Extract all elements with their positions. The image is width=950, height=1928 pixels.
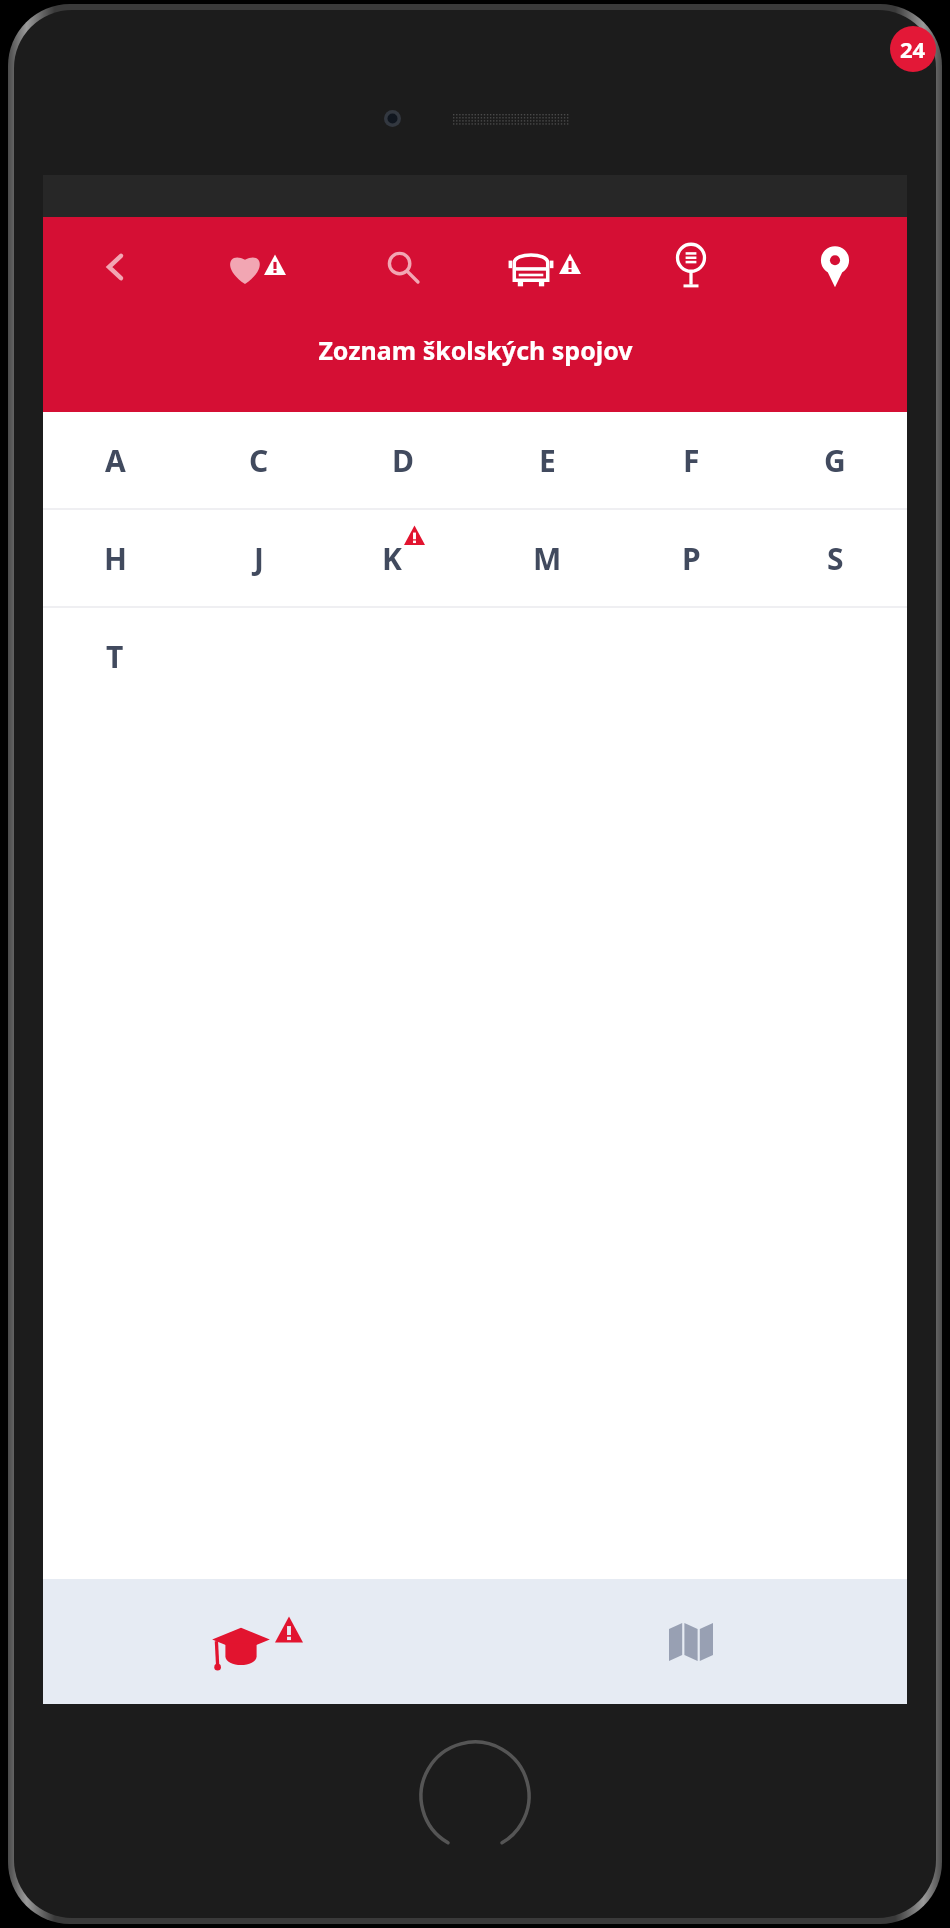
staticText: T xyxy=(106,636,124,677)
staticText: D xyxy=(392,440,414,481)
button[interactable]: Notifications xyxy=(890,26,936,72)
button[interactable]: Map xyxy=(475,1579,907,1704)
button[interactable]: C xyxy=(187,412,331,508)
button[interactable]: H xyxy=(43,510,187,606)
button[interactable]: Search xyxy=(331,217,475,317)
button[interactable]: T xyxy=(43,608,187,704)
button[interactable]: J xyxy=(187,510,331,606)
staticText: 24 xyxy=(900,34,926,64)
button[interactable]: D xyxy=(331,412,475,508)
staticText: G xyxy=(824,440,846,481)
staticText: Zoznam školských spojov xyxy=(318,333,633,367)
button[interactable]: Departures xyxy=(475,217,619,317)
button[interactable]: G xyxy=(763,412,907,508)
button[interactable]: P xyxy=(619,510,763,606)
button[interactable]: F xyxy=(619,412,763,508)
staticText: M xyxy=(533,538,562,579)
button[interactable]: E xyxy=(475,412,619,508)
button[interactable]: Back xyxy=(43,217,187,317)
button[interactable]: School connections xyxy=(43,1579,475,1704)
button[interactable]: K xyxy=(331,510,475,606)
button[interactable]: A xyxy=(43,412,187,508)
button[interactable]: M xyxy=(475,510,619,606)
button[interactable]: Stops xyxy=(619,217,763,317)
staticText: P xyxy=(682,538,701,579)
button[interactable]: Map xyxy=(763,217,907,317)
staticText: A xyxy=(105,440,126,481)
staticText: F xyxy=(683,440,700,481)
button[interactable]: S xyxy=(763,510,907,606)
button[interactable]: Favourites xyxy=(187,217,331,317)
staticText: C xyxy=(249,440,269,481)
staticText: S xyxy=(827,538,844,579)
staticText: E xyxy=(539,440,556,481)
staticText: H xyxy=(104,538,127,579)
staticText: K xyxy=(382,538,402,579)
staticText: J xyxy=(254,538,264,579)
